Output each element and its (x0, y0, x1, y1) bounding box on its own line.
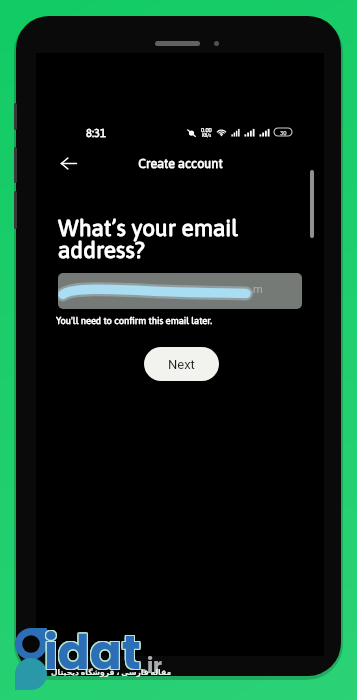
staticText: idat (44, 620, 141, 686)
staticText: idat (43, 620, 140, 686)
button[interactable]: Back (52, 147, 84, 179)
staticText: idat (44, 619, 141, 685)
staticText: .ir (141, 651, 163, 680)
staticText: idat (45, 620, 142, 686)
button[interactable]: .m (58, 273, 302, 309)
staticText: 30 (280, 129, 287, 136)
staticText: مقاله فارسی ، فروشگاه دیجیتال (51, 667, 172, 677)
staticText: idat (45, 621, 142, 687)
staticText: What’s your email address? (58, 215, 239, 263)
staticText: .m (250, 283, 263, 296)
staticText: idat (44, 621, 141, 687)
staticText: 0.00 (201, 126, 212, 133)
button[interactable]: Next (144, 347, 219, 381)
staticText: KB/s (202, 133, 212, 138)
staticText: Next (168, 357, 195, 372)
staticText: Create account (138, 156, 223, 170)
staticText: 8:31 (86, 127, 106, 140)
staticText: idat (45, 619, 142, 685)
staticText: You'll need to confirm this email later. (56, 315, 213, 326)
staticText: idat (43, 619, 140, 685)
staticText: idat (43, 621, 140, 687)
